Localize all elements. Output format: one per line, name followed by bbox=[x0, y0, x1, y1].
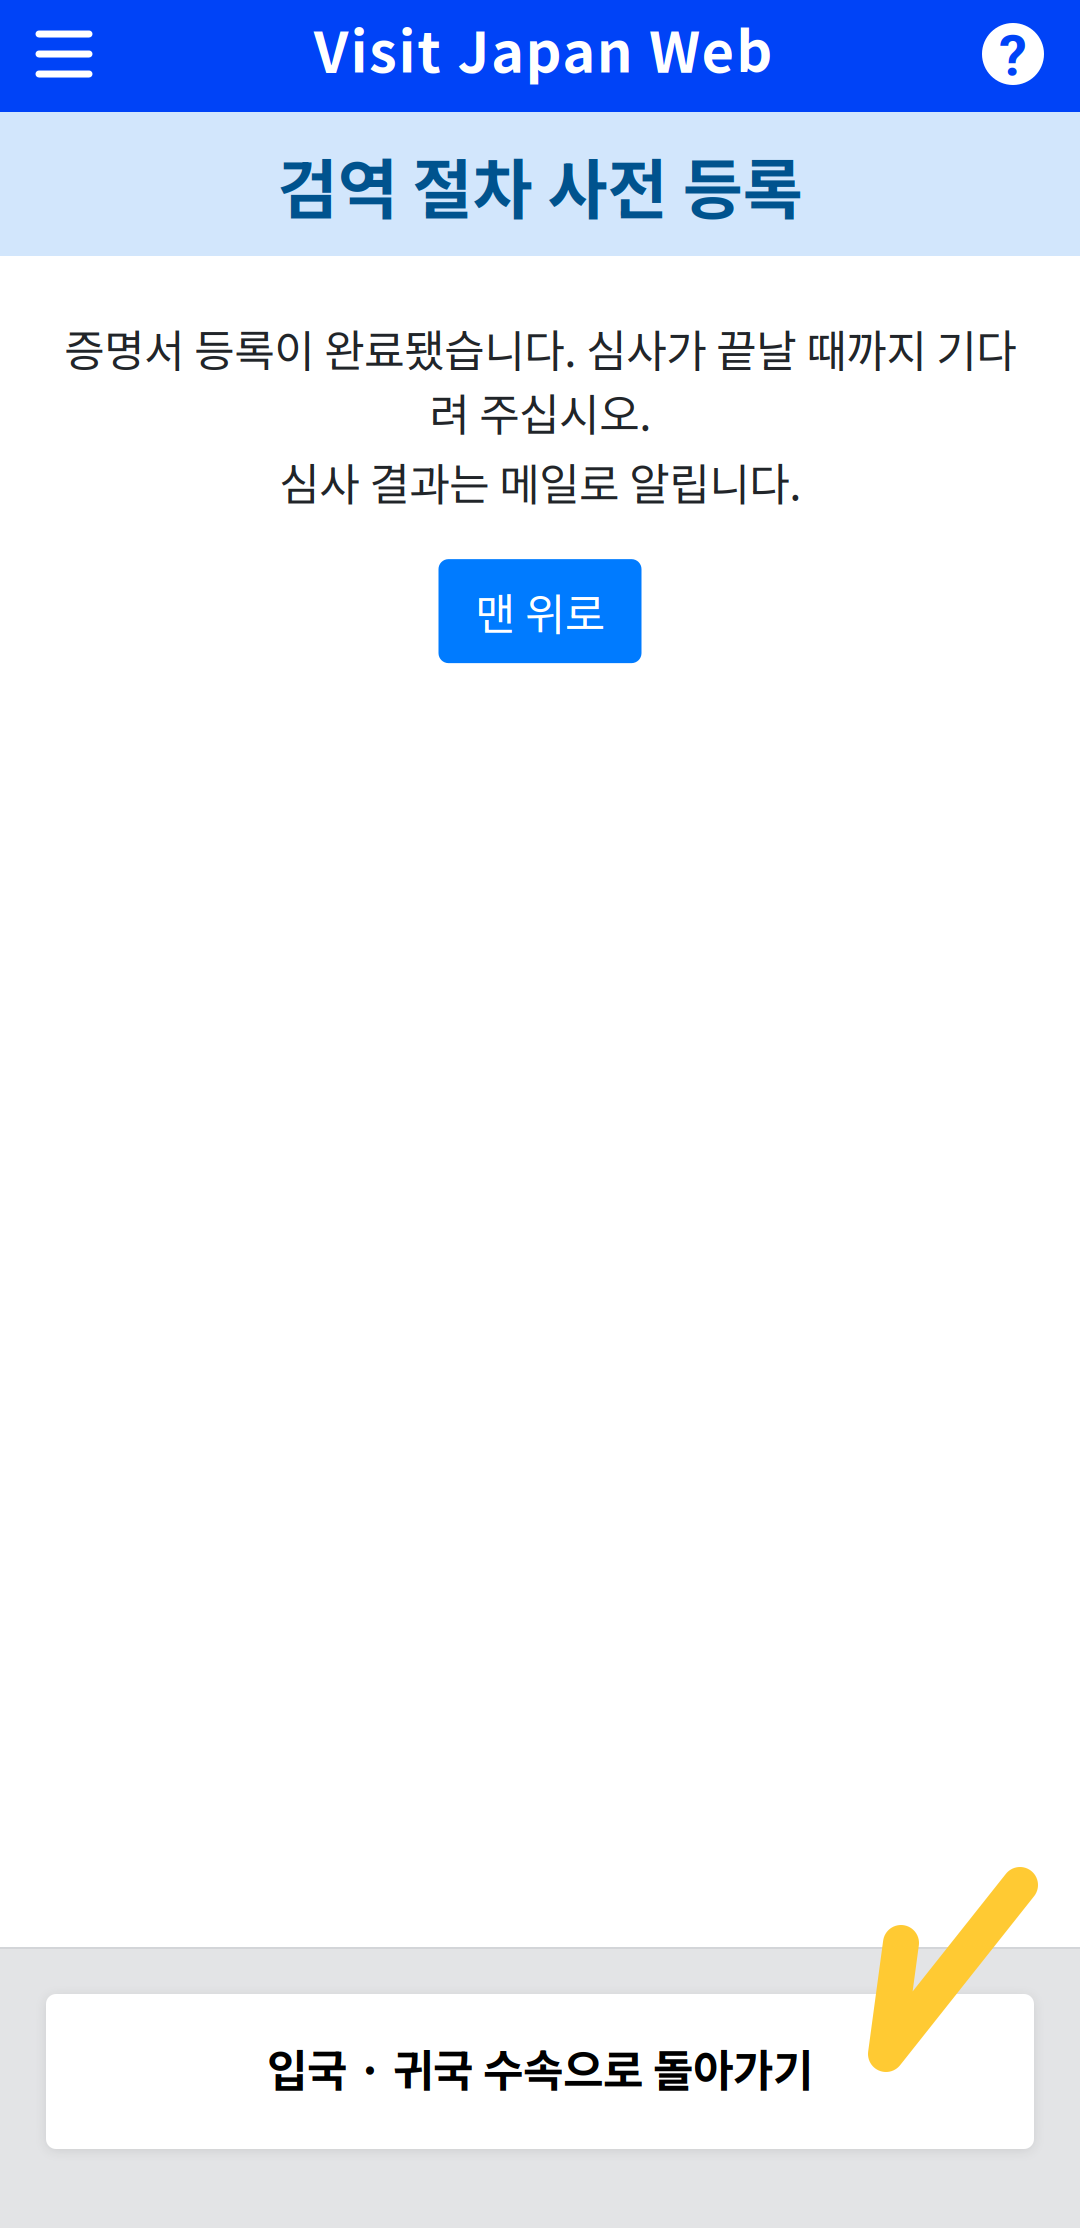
staticText: 입국 · 귀국 수속으로 돌아가기 bbox=[267, 2036, 813, 2099]
button[interactable]: 맨 위로 bbox=[438, 559, 641, 663]
staticText: 심사 결과는 메일로 알립니다. bbox=[279, 449, 801, 513]
staticText: 맨 위로 bbox=[475, 579, 605, 643]
staticText: ? bbox=[999, 23, 1027, 89]
button[interactable]: Help bbox=[950, 0, 1080, 112]
button[interactable]: 입국 · 귀국 수속으로 돌아가기 bbox=[46, 1994, 1034, 2149]
staticText: Visit Japan Web bbox=[314, 7, 772, 89]
button[interactable]: Menu bbox=[0, 0, 128, 112]
staticText: 증명서 등록이 완료됐습니다. 심사가 끝날 때까지 기다려 주십시오. bbox=[64, 316, 1016, 443]
staticText: 검역 절차 사전 등록 bbox=[277, 138, 802, 232]
